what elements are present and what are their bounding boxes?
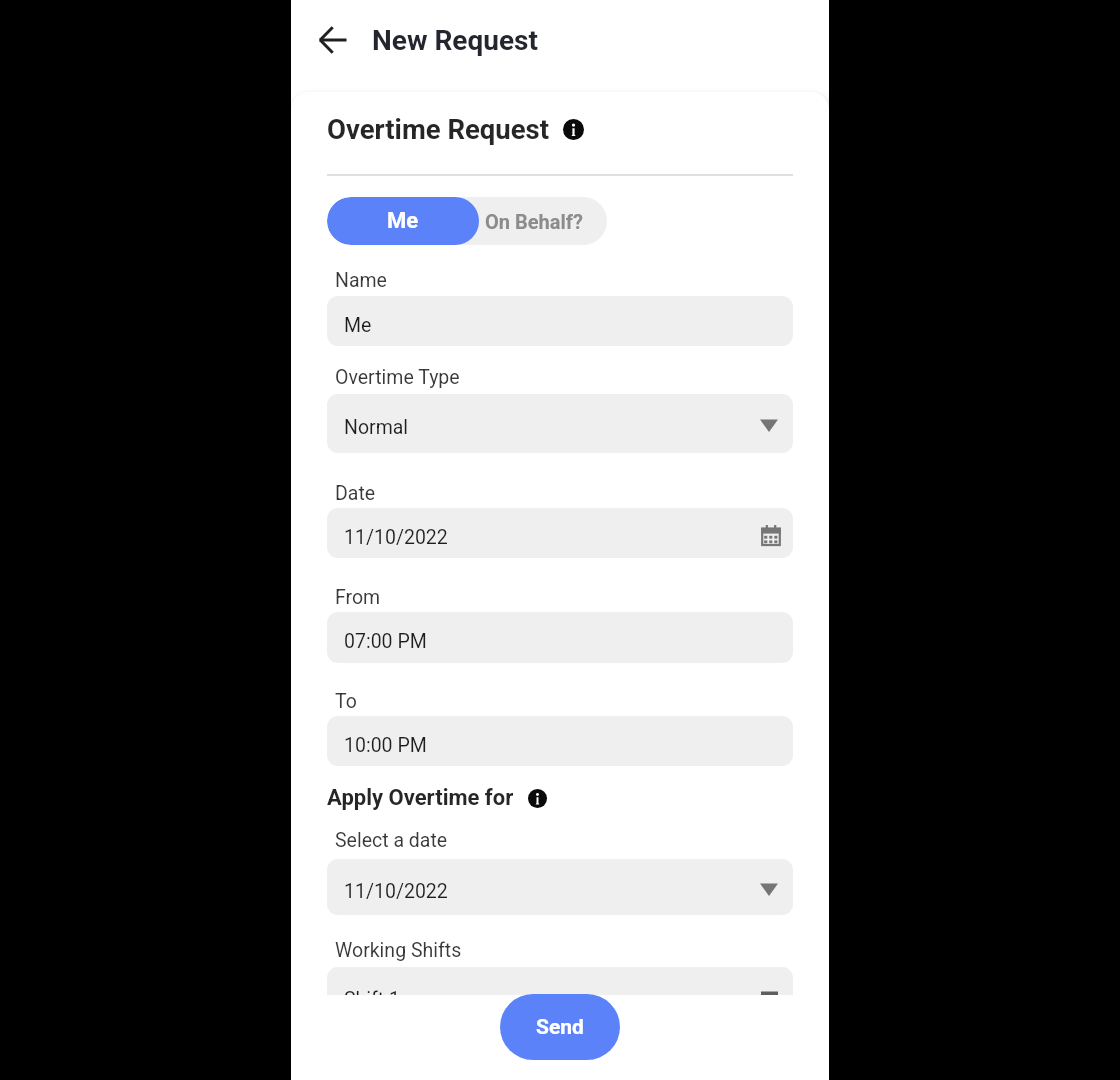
staticText: New Request (372, 24, 538, 57)
staticText: Send (536, 1015, 584, 1040)
staticText: Overtime Type (335, 366, 460, 389)
button[interactable]: Back (312, 19, 354, 61)
staticText: Shift 1 (344, 988, 401, 995)
staticText: 07:00 PM (344, 630, 427, 653)
staticText: 11/10/2022 (344, 526, 448, 549)
staticText: Overtime Request (327, 113, 550, 145)
button[interactable]: Me (327, 296, 793, 346)
staticText: Me (344, 314, 372, 337)
staticText: 10:00 PM (344, 734, 427, 757)
staticText: Working Shifts (335, 939, 462, 962)
staticText: To (335, 690, 357, 713)
staticText: Apply Overtime for (327, 785, 514, 811)
button[interactable]: Shift 1 (327, 967, 793, 995)
staticText: 11/10/2022 (344, 880, 448, 903)
button[interactable]: On Behalf? (479, 197, 607, 245)
staticText: Select a date (335, 829, 448, 852)
staticText: Normal (344, 416, 409, 439)
staticText: From (335, 586, 381, 609)
button[interactable]: Me (327, 197, 479, 245)
staticText: Me (387, 208, 419, 234)
staticText: Date (335, 482, 376, 505)
button[interactable]: 10:00 PM (327, 716, 793, 766)
button[interactable]: Information (563, 119, 584, 140)
button[interactable]: Normal (327, 394, 793, 453)
button[interactable]: 07:00 PM (327, 612, 793, 663)
staticText: Name (335, 269, 387, 292)
button[interactable]: 11/10/2022 (327, 859, 793, 915)
staticText: On Behalf? (485, 210, 583, 233)
button[interactable]: Send (500, 994, 620, 1060)
button[interactable]: Information (528, 789, 547, 808)
button[interactable]: 11/10/2022 (327, 508, 793, 558)
